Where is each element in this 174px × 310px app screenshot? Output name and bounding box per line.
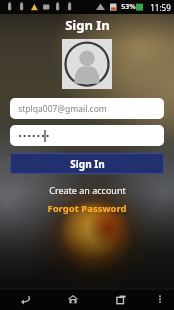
staticText: stplqa007@gmail.com bbox=[18, 103, 107, 115]
button[interactable]: Create an account bbox=[43, 183, 132, 197]
staticText: Sign In bbox=[70, 157, 105, 171]
button[interactable]: stplqa007@gmail.com bbox=[10, 98, 164, 119]
staticText: 11:59 bbox=[150, 2, 171, 13]
button[interactable] bbox=[10, 125, 164, 146]
button[interactable]: Home bbox=[49, 288, 97, 310]
button[interactable]: Back bbox=[0, 288, 49, 310]
staticText: Create an account bbox=[49, 184, 126, 196]
button[interactable]: Recent apps bbox=[97, 288, 145, 310]
staticText: 53% bbox=[121, 2, 136, 12]
staticText: Sign In bbox=[65, 16, 110, 34]
button[interactable]: More options bbox=[145, 288, 174, 310]
staticText: Forgot Password bbox=[47, 202, 127, 215]
button[interactable]: Forgot Password bbox=[41, 201, 133, 216]
button[interactable]: Sign In bbox=[10, 153, 164, 174]
